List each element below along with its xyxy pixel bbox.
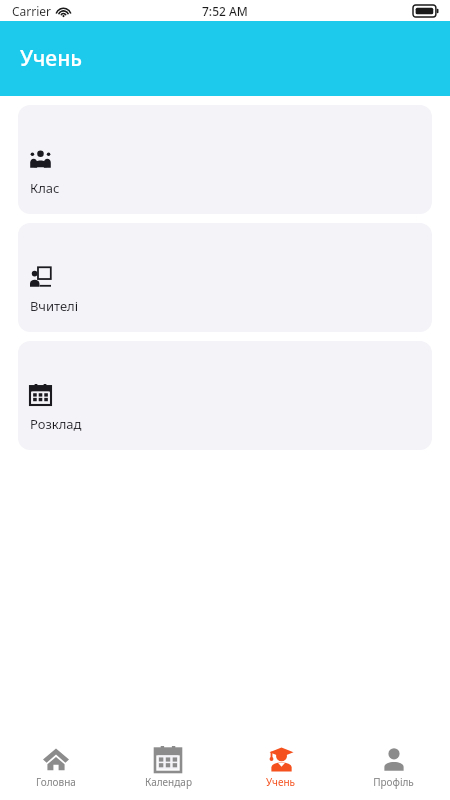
staticText: 7:52 AM: [202, 3, 248, 19]
staticText: Клас: [30, 179, 60, 197]
button[interactable]: Учень: [224, 735, 337, 800]
staticText: Вчителі: [30, 297, 79, 315]
staticText: Учень: [266, 775, 295, 789]
button[interactable]: Календар: [112, 735, 224, 800]
staticText: Профіль: [373, 775, 414, 789]
button[interactable]: Головна: [0, 735, 112, 800]
button[interactable]: Вчителі: [18, 223, 432, 332]
staticText: Учень: [20, 44, 83, 73]
staticText: Головна: [36, 775, 76, 789]
staticText: Розклад: [30, 415, 82, 433]
button[interactable]: Розклад: [18, 341, 432, 450]
button[interactable]: Профіль: [337, 735, 450, 800]
staticText: Календар: [145, 775, 192, 789]
button[interactable]: Клас: [18, 105, 432, 214]
staticText: Carrier: [12, 3, 52, 19]
